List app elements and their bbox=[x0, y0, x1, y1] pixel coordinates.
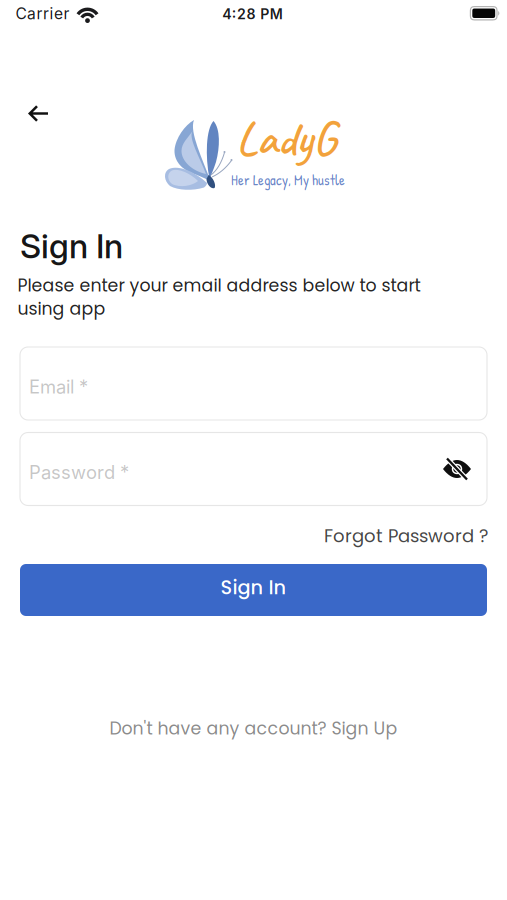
staticText: Sign In bbox=[20, 226, 123, 266]
staticText: Password * bbox=[29, 461, 129, 483]
staticText: 4:28 PM bbox=[222, 5, 283, 22]
staticText: Sign Up bbox=[331, 716, 397, 741]
button[interactable]: Sign Up bbox=[331, 716, 397, 741]
button[interactable]: Forgot Password ? bbox=[324, 523, 488, 549]
staticText: Her Legacy, My hustle bbox=[231, 170, 345, 190]
button[interactable]: Show password bbox=[443, 456, 471, 481]
staticText: LadyG bbox=[236, 108, 336, 168]
button[interactable]: Sign In bbox=[20, 564, 487, 616]
staticText: Email * bbox=[29, 376, 88, 398]
staticText: Forgot Password ? bbox=[324, 523, 488, 549]
staticText: Carrier bbox=[15, 4, 69, 23]
staticText: Sign In bbox=[220, 574, 286, 601]
staticText: Please enter your email address below to… bbox=[17, 273, 420, 298]
button[interactable]: Back bbox=[28, 105, 49, 121]
staticText: Don't have any account? bbox=[109, 716, 326, 741]
staticText: using app bbox=[17, 297, 105, 321]
